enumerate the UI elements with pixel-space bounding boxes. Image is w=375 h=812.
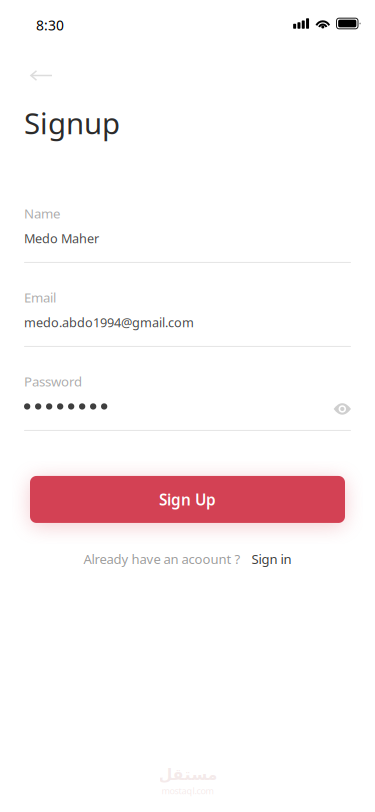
button[interactable]: Password (24, 375, 351, 431)
staticText: Email (24, 288, 56, 306)
staticText: 8:30 (36, 16, 64, 34)
staticText: Password (24, 372, 82, 390)
staticText: Medo Maher (24, 230, 99, 247)
staticText: Signup (24, 103, 120, 143)
staticText: Name (24, 204, 60, 222)
staticText: Sign Up (159, 489, 216, 510)
button[interactable]: Show password (334, 402, 351, 415)
staticText: Already have an acoount ? (83, 550, 240, 568)
staticText: mostaql.com (161, 785, 213, 797)
button[interactable]: Sign in (251, 550, 291, 568)
button[interactable]: Back (0, 60, 66, 91)
button[interactable]: Email (24, 291, 351, 347)
button[interactable]: Name (24, 207, 351, 263)
staticText: Sign in (251, 550, 291, 568)
button[interactable]: Sign Up (30, 476, 345, 523)
staticText: مستقل (158, 765, 217, 784)
staticText: medo.abdo1994@gmail.com (24, 314, 194, 331)
